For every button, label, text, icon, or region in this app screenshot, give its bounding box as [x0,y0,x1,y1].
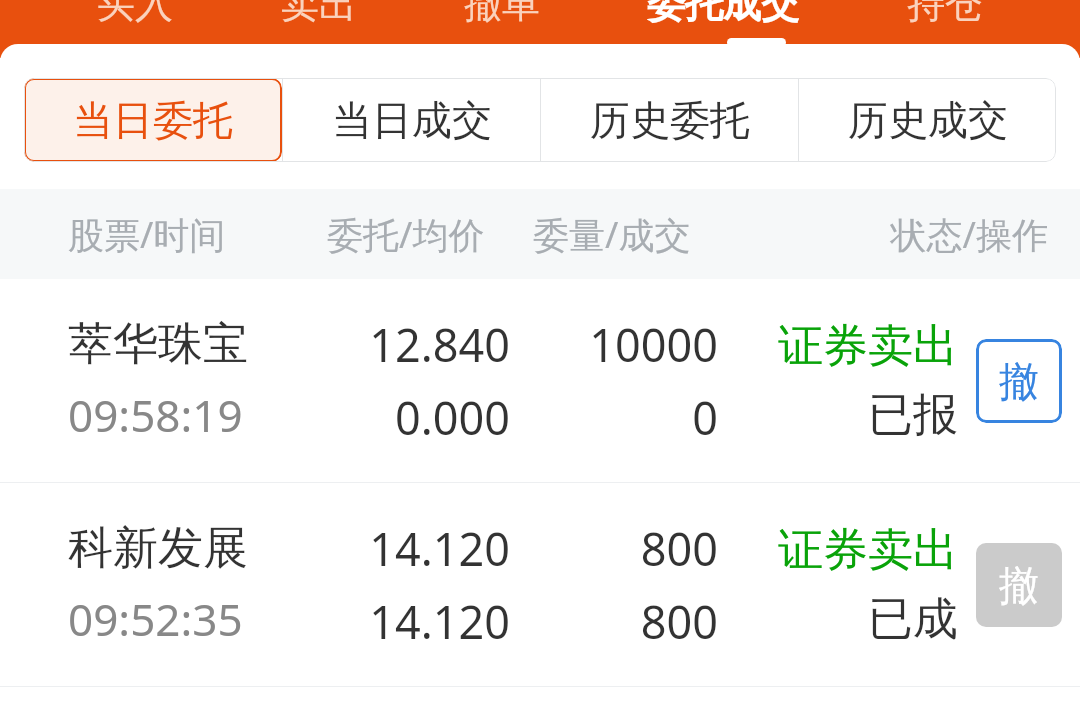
staticText: 0.000 [394,387,510,448]
staticText: 当日成交 [332,95,492,145]
button[interactable]: 当日委托 [24,78,282,162]
staticText: 科新发展 [68,520,248,577]
staticText: 股票/时间 [68,210,258,259]
staticText: 09:58:19 [68,385,243,445]
staticText: 买入 [97,0,173,26]
staticText: 当日委托 [73,95,233,145]
button[interactable]: 撤单 [976,339,1062,423]
button[interactable]: 历史成交 [799,78,1056,162]
staticText: 09:52:35 [68,589,243,649]
staticText: 萃华珠宝 [68,316,248,373]
staticText: 委托成交 [647,0,799,26]
staticText: 卖出 [281,0,357,26]
staticText: 已报 [868,387,958,444]
staticText: 状态/操作 [858,210,1048,259]
button[interactable]: 持仓 [897,0,993,32]
staticText: 800 [640,518,718,579]
button[interactable]: 科新发展 [0,483,1080,686]
staticText: 撤 [999,356,1039,406]
staticText: 已成 [868,591,958,648]
staticText: 持仓 [907,0,983,26]
button[interactable]: 撤单 [976,543,1062,627]
button[interactable]: 撤单 [454,0,550,32]
button[interactable]: 卖出 [271,0,367,32]
staticText: 10000 [589,314,718,375]
staticText: 历史成交 [848,95,1008,145]
staticText: 证券卖出 [778,522,958,579]
staticText: 委量/成交 [533,210,723,259]
staticText: 14.120 [369,518,510,579]
staticText: 撤单 [464,0,540,26]
staticText: 0 [692,387,718,448]
button[interactable]: 买入 [87,0,183,32]
button[interactable]: 历史委托 [541,78,798,162]
staticText: 证券卖出 [778,318,958,375]
staticText: 14.120 [369,591,510,652]
staticText: 撤 [999,560,1039,610]
staticText: 委托/均价 [327,210,517,259]
button[interactable]: 委托成交 [637,0,809,32]
button[interactable]: 萃华珠宝 [0,279,1080,482]
staticText: 历史委托 [590,95,750,145]
staticText: 12.840 [369,314,510,375]
staticText: 800 [640,591,718,652]
button[interactable]: 当日成交 [283,78,540,162]
